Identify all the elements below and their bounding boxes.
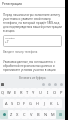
button[interactable]: U: [37, 88, 44, 97]
staticText: Регистрация: [2, 2, 22, 6]
button[interactable]: Keyboard tool: [60, 83, 63, 86]
button[interactable]: A: [3, 99, 9, 108]
staticText: Z: [10, 112, 13, 117]
button[interactable]: B: [35, 110, 42, 119]
button[interactable]: H: [34, 99, 41, 108]
staticText: I: [47, 90, 49, 95]
button[interactable]: P: [58, 88, 65, 97]
staticText: E: [14, 90, 17, 95]
staticText: Перед началом игры заполните анкету учас…: [3, 13, 62, 33]
staticText: R: [20, 90, 23, 95]
button[interactable]: V: [28, 110, 35, 119]
staticText: L: [57, 101, 60, 106]
button[interactable]: X: [14, 110, 21, 119]
staticText: U: [39, 90, 42, 95]
staticText: F: [23, 101, 26, 106]
button[interactable]: S: [9, 99, 15, 108]
button[interactable]: C: [21, 110, 28, 119]
staticText: +7: [5, 40, 9, 44]
staticText: Q: [1, 90, 5, 95]
staticText: W: [7, 90, 11, 95]
button[interactable]: L: [55, 99, 62, 108]
staticText: K: [50, 101, 53, 106]
button[interactable]: G: [27, 99, 34, 108]
button[interactable]: F: [21, 99, 27, 108]
staticText: H: [36, 101, 39, 106]
staticText: M: [51, 112, 55, 117]
button[interactable]: J: [41, 99, 48, 108]
button[interactable]: Keyboard tool: [54, 83, 57, 86]
button[interactable]: Menu: [1, 83, 4, 86]
staticText: N: [44, 112, 48, 117]
staticText: D: [17, 101, 20, 106]
button[interactable]: R: [18, 88, 24, 97]
staticText: P: [60, 90, 63, 95]
staticText: S: [11, 101, 14, 106]
staticText: X: [16, 112, 19, 117]
staticText: Телефон: [5, 36, 15, 39]
staticText: G: [29, 101, 32, 106]
button[interactable]: Телефон: [3, 35, 62, 47]
button[interactable]: T: [24, 88, 30, 97]
button[interactable]: Keyboard tool: [42, 83, 45, 86]
button[interactable]: O: [51, 88, 58, 97]
staticText: C: [23, 112, 26, 117]
staticText: V: [30, 112, 33, 117]
staticText: T: [26, 90, 29, 95]
button[interactable]: N: [42, 110, 49, 119]
button[interactable]: K: [48, 99, 55, 108]
button[interactable]: E: [12, 88, 18, 97]
button[interactable]: Keyboard tool: [48, 83, 51, 86]
staticText: A: [5, 101, 8, 106]
button[interactable]: D: [15, 99, 21, 108]
button[interactable]: Shift: [0, 110, 8, 119]
staticText: B: [37, 112, 40, 117]
button[interactable]: Y: [30, 88, 37, 97]
staticText: J: [44, 101, 46, 106]
staticText: Вставить из буфера: [19, 76, 46, 80]
staticText: Указывая данные, вы соглашаетесь с обраб…: [3, 60, 62, 72]
staticText: Y: [32, 90, 35, 95]
button[interactable]: I: [44, 88, 51, 97]
button[interactable]: Q: [0, 88, 6, 97]
button[interactable]: W: [6, 88, 12, 97]
button[interactable]: Backspace: [56, 110, 65, 119]
button[interactable]: Z: [8, 110, 14, 119]
staticText: O: [53, 90, 57, 95]
button[interactable]: M: [49, 110, 56, 119]
staticText: Введите номер телефона: [3, 50, 38, 54]
